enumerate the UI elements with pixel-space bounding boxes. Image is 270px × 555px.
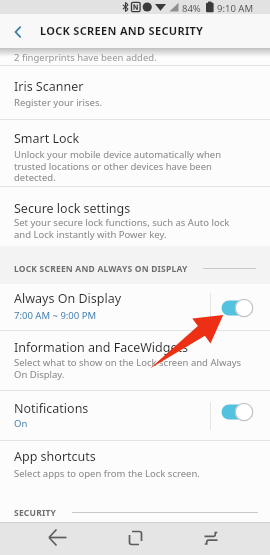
- staticText: App shortcuts: [14, 448, 96, 465]
- staticText: Always On Display: [14, 290, 122, 307]
- button[interactable]: [180, 522, 270, 555]
- button[interactable]: Information and FaceWidgets: [0, 331, 270, 390]
- staticText: Secure lock settings: [14, 200, 131, 217]
- button[interactable]: [90, 522, 180, 555]
- staticText: 2 fingerprints have been added.: [14, 51, 157, 64]
- staticText: Smart Lock: [14, 130, 80, 147]
- staticText: 9:10 AM: [217, 2, 254, 15]
- staticText: LOCK SCREEN AND SECURITY: [40, 23, 204, 38]
- button[interactable]: [0, 522, 90, 555]
- staticText: On: [14, 417, 28, 430]
- staticText: 7:00 AM ~ 9:00 PM: [14, 309, 97, 322]
- button[interactable]: Smart Lock: [0, 120, 270, 186]
- button[interactable]: Iris Scanner: [0, 66, 270, 119]
- button[interactable]: Notifications: [0, 391, 270, 440]
- button[interactable]: Always On Display: [0, 284, 270, 330]
- staticText: LOCK SCREEN AND ALWAYS ON DISPLAY: [14, 263, 188, 275]
- staticText: Select apps to open from the Lock screen…: [14, 467, 200, 480]
- button[interactable]: [216, 401, 256, 423]
- staticText: SECURITY: [14, 507, 57, 519]
- button[interactable]: App shortcuts: [0, 441, 270, 491]
- staticText: Notifications: [14, 400, 89, 417]
- staticText: Register your irises.: [14, 96, 102, 109]
- staticText: Unlock your mobile device automatically …: [14, 148, 221, 184]
- staticText: Iris Scanner: [14, 78, 84, 95]
- button[interactable]: [216, 297, 256, 319]
- staticText: Select what to show on the Lock screen a…: [14, 356, 242, 381]
- staticText: 84%: [182, 2, 201, 15]
- button[interactable]: [4, 18, 32, 46]
- button[interactable]: Secure lock settings: [0, 187, 270, 246]
- staticText: Set your secure lock functions, such as …: [14, 216, 230, 241]
- staticText: Information and FaceWidgets: [14, 339, 188, 356]
